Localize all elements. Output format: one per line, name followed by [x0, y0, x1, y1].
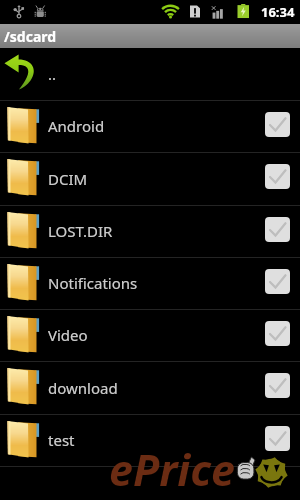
button[interactable]: LOST.DIR: [0, 206, 300, 258]
button[interactable]: Select Android: [265, 112, 290, 137]
staticText: DCIM: [48, 169, 88, 189]
staticText: /sdcard: [4, 27, 57, 46]
button[interactable]: download: [0, 362, 300, 415]
button[interactable]: Select download: [265, 373, 290, 398]
button[interactable]: Select LOST.DIR: [265, 217, 290, 242]
button[interactable]: Video: [0, 310, 300, 362]
staticText: Notifications: [48, 273, 138, 293]
button[interactable]: test: [0, 415, 300, 467]
staticText: test: [48, 430, 75, 450]
button[interactable]: Android: [0, 101, 300, 153]
staticText: Android: [48, 116, 105, 136]
staticText: Video: [48, 325, 88, 345]
staticText: ePrice: [109, 440, 235, 499]
staticText: LOST.DIR: [48, 221, 113, 241]
button[interactable]: Notifications: [0, 258, 300, 310]
button[interactable]: Select Notifications: [265, 269, 290, 294]
button[interactable]: Select DCIM: [265, 164, 290, 189]
staticText: download: [48, 378, 118, 398]
staticText: ..: [48, 64, 57, 84]
button[interactable]: Select Video: [265, 321, 290, 346]
staticText: 16:34: [261, 3, 295, 21]
button[interactable]: Up one level: [0, 48, 300, 101]
button[interactable]: DCIM: [0, 153, 300, 206]
button[interactable]: Select test: [265, 426, 290, 451]
button[interactable]: /sdcard: [0, 24, 300, 48]
